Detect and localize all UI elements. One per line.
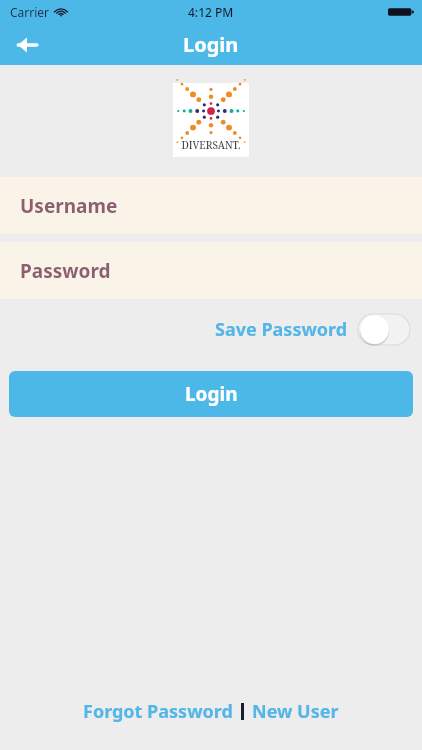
button[interactable]: Password	[0, 242, 422, 299]
staticText: New User	[252, 699, 339, 724]
button[interactable]: Login	[9, 371, 413, 417]
staticText: Carrier	[10, 4, 50, 20]
other: Save Password toggle	[358, 314, 410, 345]
staticText: Login	[185, 381, 238, 407]
staticText: Login	[183, 31, 239, 58]
staticText: 4:12 PM	[188, 4, 234, 20]
staticText: DIVERSANT.	[173, 138, 249, 152]
button[interactable]: Save Password	[215, 314, 410, 345]
button[interactable]: Username	[0, 177, 422, 234]
staticText: Forgot Password	[83, 699, 233, 724]
staticText: Save Password	[215, 317, 348, 342]
button[interactable]: Back	[6, 24, 48, 65]
button[interactable]: Forgot Password	[79, 695, 237, 728]
button[interactable]: New User	[248, 695, 343, 728]
staticText: Username	[20, 193, 118, 219]
staticText: Password	[20, 258, 111, 284]
